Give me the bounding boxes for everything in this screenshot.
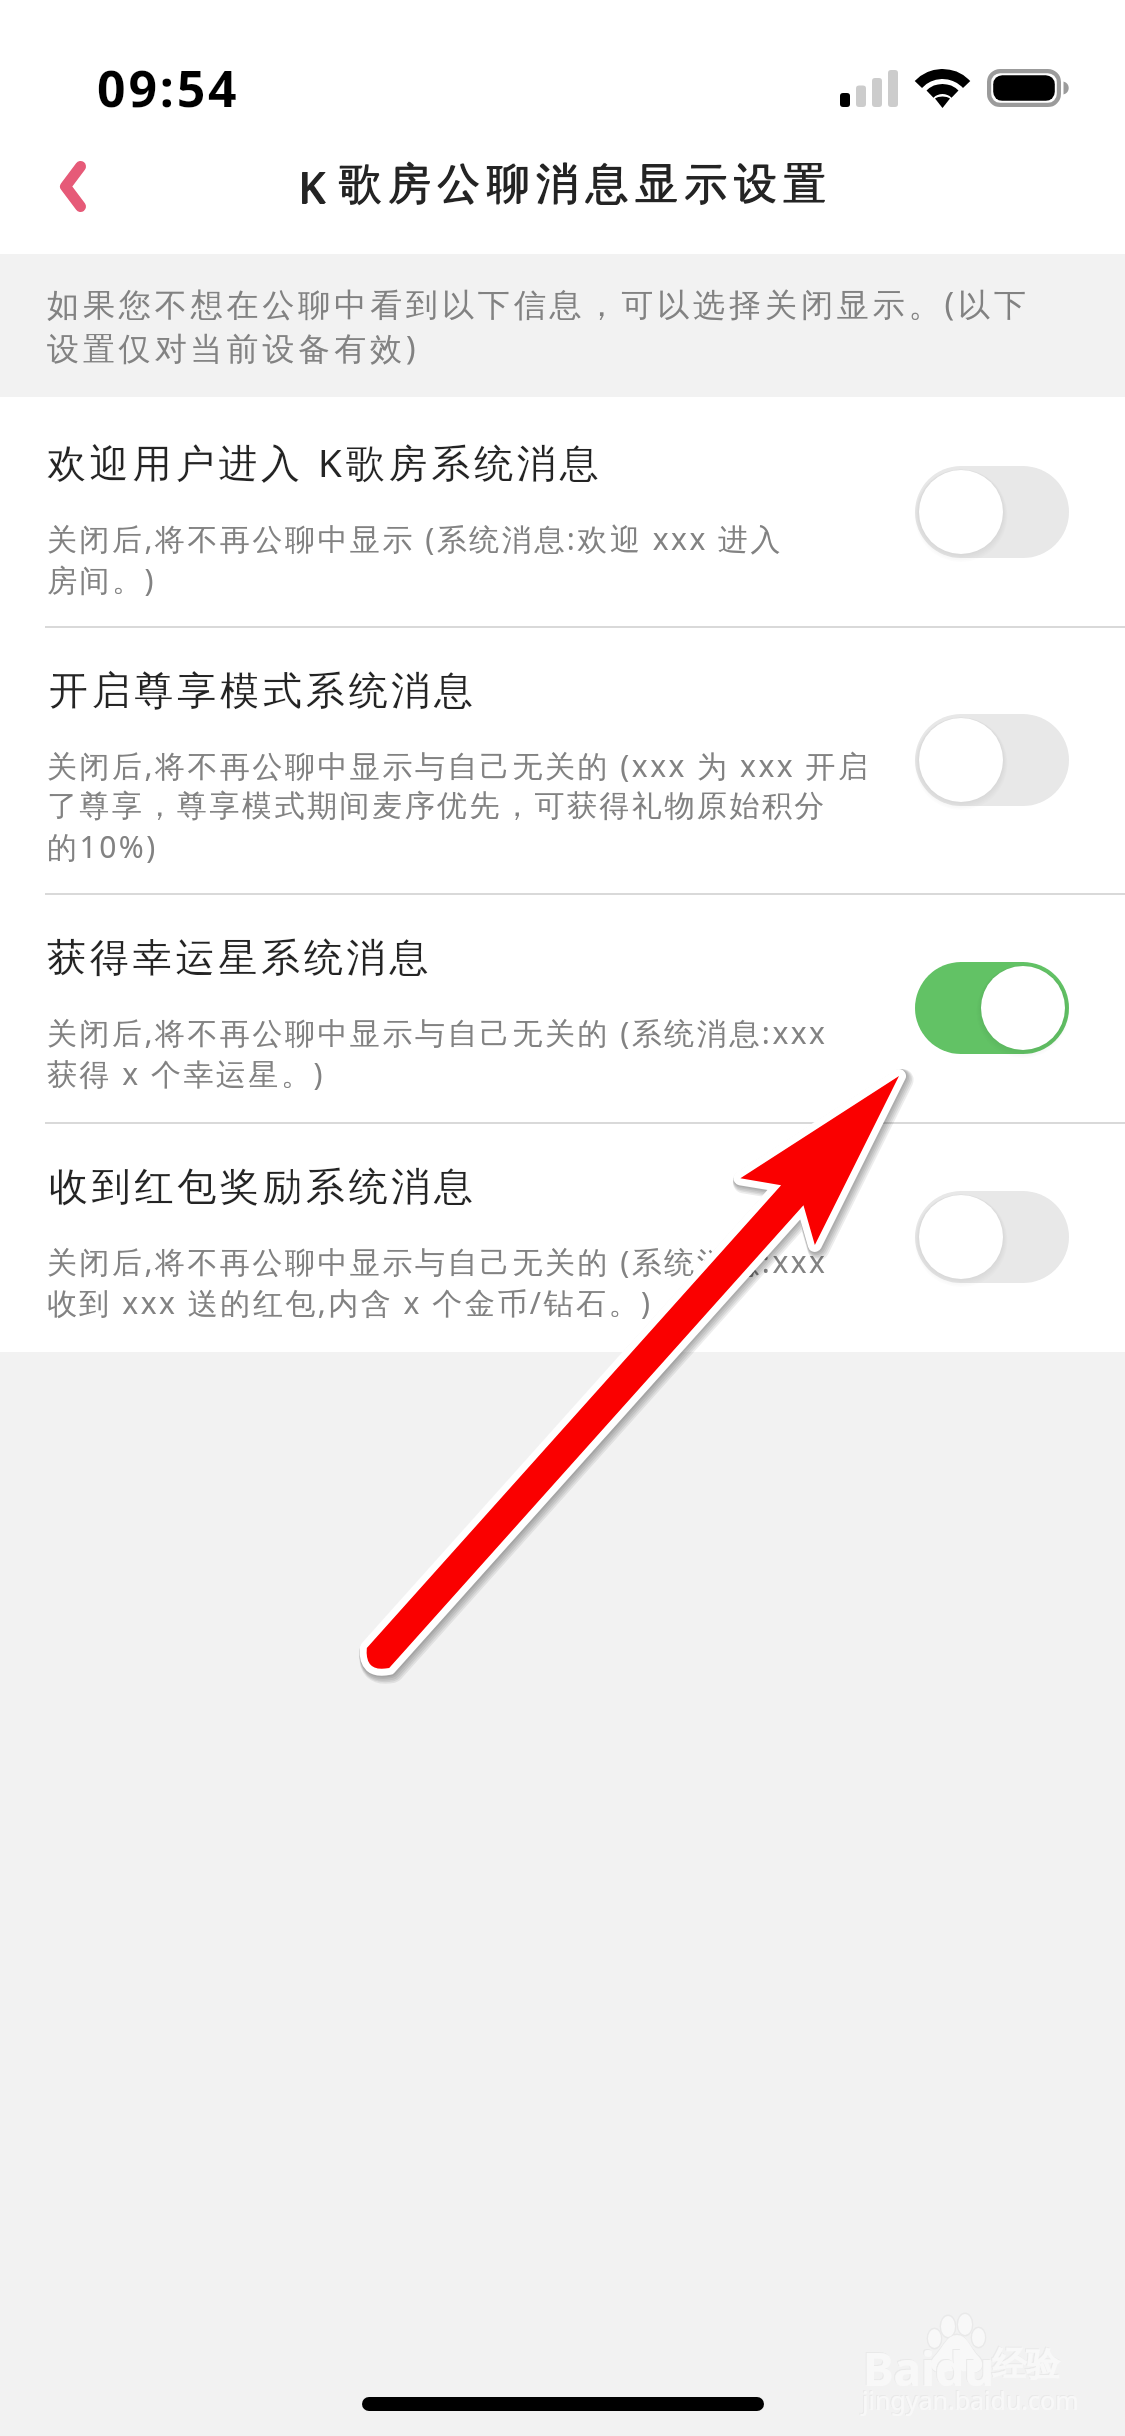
button[interactable]: Switch on <box>915 962 1069 1054</box>
staticText: 获得幸运星系统消息 <box>47 938 433 982</box>
staticText: 关闭后,将不再公聊中显示与自己无关的 (xxx 为 xxx 开启 了尊享，尊享模… <box>47 746 871 868</box>
staticText: K <box>299 157 327 216</box>
staticText: 收到红包奖励系统消息 <box>47 1167 475 1211</box>
staticText: 开启尊享模式系统消息 <box>47 671 475 715</box>
staticText: K <box>298 157 326 216</box>
button[interactable]: Switch off <box>915 466 1069 558</box>
staticText: 欢迎用户进入 K歌房系统消息 <box>47 442 603 488</box>
staticText: Baidu <box>863 2337 994 2400</box>
staticText: jingyan.baidu.com <box>862 2383 1079 2417</box>
staticText: 经验 <box>992 2343 1060 2386</box>
staticText: 歌房公聊消息显示设置 <box>335 158 829 212</box>
button[interactable]: Switch off <box>915 1191 1069 1283</box>
button[interactable]: Back <box>18 131 130 241</box>
staticText: 关闭后,将不再公聊中显示与自己无关的 (系统消息:xxx 收到 xxx 送的红包… <box>47 1242 828 1324</box>
staticText: K <box>298 158 326 217</box>
staticText: 09:54 <box>97 54 240 122</box>
button[interactable]: 获得幸运星系统消息 <box>0 893 1125 1122</box>
button[interactable]: 收到红包奖励系统消息 <box>0 1122 1125 1352</box>
button[interactable]: Switch off <box>915 714 1069 806</box>
staticText: jingyan.baidu.com <box>861 2382 1078 2416</box>
staticText: 如果您不想在公聊中看到以下信息，可以选择关闭显示。(以下 设置仅对当前设备有效) <box>47 283 1030 371</box>
staticText: 歌房公聊消息显示设置 <box>336 157 830 211</box>
staticText: Baidu <box>862 2336 993 2399</box>
button[interactable]: 欢迎用户进入 K歌房系统消息 <box>0 397 1125 626</box>
staticText: 经验 <box>991 2342 1059 2385</box>
staticText: 关闭后,将不再公聊中显示 (系统消息:欢迎 xxx 进入 房间。) <box>47 519 784 601</box>
staticText: 关闭后,将不再公聊中显示与自己无关的 (系统消息:xxx 获得 x 个幸运星。) <box>47 1013 828 1095</box>
staticText: 歌房公聊消息显示设置 <box>335 157 829 211</box>
button[interactable]: 开启尊享模式系统消息 <box>0 626 1125 893</box>
